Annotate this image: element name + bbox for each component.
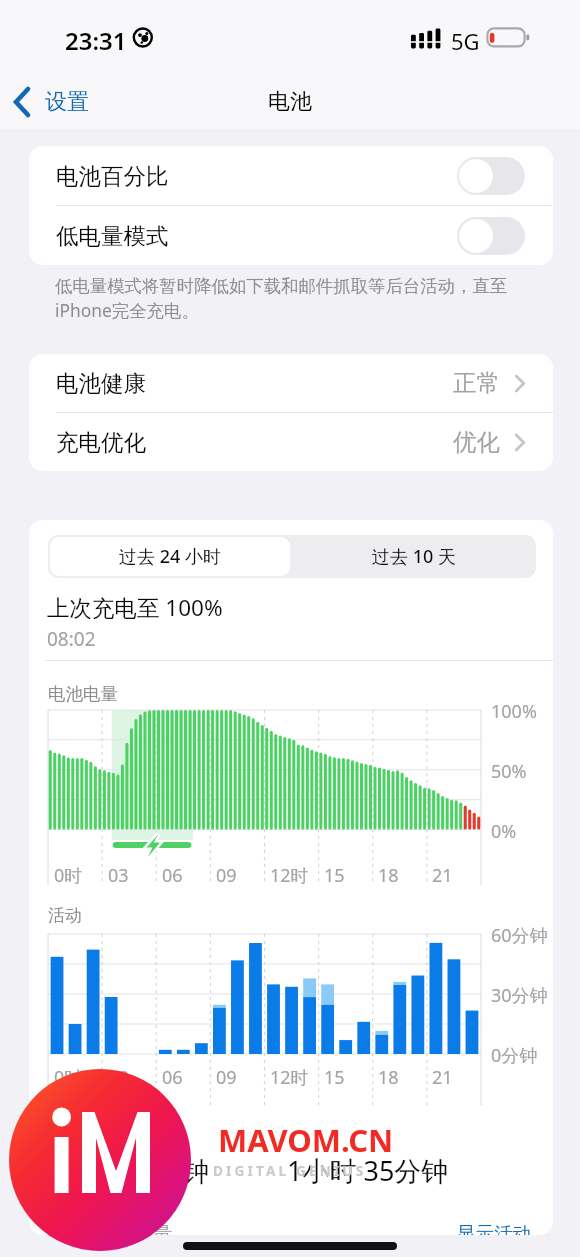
button[interactable]: 过去 10 天	[292, 535, 536, 578]
button[interactable]: 电池百分比	[29, 146, 553, 205]
staticText: 充电优化	[56, 428, 146, 456]
staticText: 08:02	[47, 626, 96, 652]
staticText: 0分钟	[491, 1043, 538, 1068]
staticText: 低电量模式	[56, 222, 169, 250]
staticText: 上次充电至 100%	[47, 592, 223, 623]
staticText: 50%	[491, 759, 527, 784]
button[interactable]: 充电优化	[29, 413, 553, 471]
staticText: 09	[216, 863, 237, 888]
staticText: 06	[162, 1065, 183, 1090]
button[interactable]: 设置	[12, 80, 89, 123]
staticText: 18	[378, 863, 399, 888]
staticText: 电池健康	[56, 369, 146, 397]
staticText: 12时	[270, 1065, 309, 1090]
staticText: 09	[216, 1065, 237, 1090]
staticText: 03	[108, 863, 129, 888]
staticText: 正常	[453, 368, 500, 398]
staticText: 电池百分比	[56, 162, 169, 190]
staticText: 23:31	[65, 24, 127, 57]
staticText: 电池	[268, 88, 312, 116]
staticText: 低电量模式将暂时降低如下载和邮件抓取等后台活动，直至 iPhone完全充电。	[55, 275, 508, 322]
staticText: 过去 10 天	[372, 544, 456, 569]
staticText: 03	[108, 1065, 129, 1090]
staticText: 设置	[45, 88, 89, 116]
button[interactable]: App 电池用量	[48, 1211, 531, 1235]
staticText: 60分钟	[491, 923, 548, 948]
staticText: 优化	[453, 427, 500, 457]
staticText: 100%	[491, 699, 537, 724]
staticText: 30分钟	[491, 983, 548, 1008]
staticText: 0%	[491, 819, 517, 844]
staticText: 18	[378, 1065, 399, 1090]
staticText: 5G	[451, 26, 480, 56]
button[interactable]: 电池健康	[29, 354, 553, 412]
staticText: App 电池用量	[48, 1219, 173, 1235]
staticText: 15	[324, 863, 345, 888]
staticText: 过去 24 小时	[119, 544, 221, 569]
staticText: MAVOM.CN	[218, 1119, 394, 1161]
staticText: 电池电量	[48, 683, 118, 705]
staticText: 1小时 35分钟	[287, 1152, 449, 1189]
staticText: 显示活动	[457, 1222, 531, 1235]
staticText: 06	[162, 863, 183, 888]
staticText: DIGITAL GENIUS	[213, 1162, 367, 1180]
staticText: 0时	[54, 1065, 83, 1090]
staticText: 15	[324, 1065, 345, 1090]
button[interactable]: 低电量模式	[29, 206, 553, 265]
staticText: 12时	[270, 863, 309, 888]
button[interactable]: 过去 24 小时	[50, 537, 290, 576]
staticText: 活动	[48, 905, 82, 926]
staticText: 21	[432, 863, 453, 888]
staticText: 21	[432, 1065, 453, 1090]
staticText: 1小时 13分钟	[48, 1152, 210, 1189]
staticText: 0时	[54, 863, 83, 888]
